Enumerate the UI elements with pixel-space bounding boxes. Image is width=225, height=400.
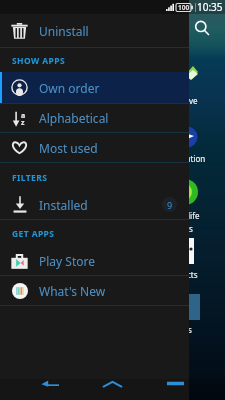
staticText: What's New (39, 283, 106, 299)
staticText: cts (187, 269, 198, 280)
staticText: Alphabetical (39, 110, 109, 126)
staticText: SHOW APPS (12, 55, 65, 67)
staticText: 9 (167, 199, 173, 211)
button[interactable]: a (0, 104, 189, 132)
staticText: s (189, 223, 193, 234)
button[interactable]: Uninstall (0, 14, 189, 47)
staticText: Own order (39, 80, 100, 96)
staticText: life (188, 210, 200, 221)
staticText: a (21, 111, 26, 121)
button[interactable]: Search (194, 20, 211, 37)
staticText: z (21, 118, 25, 128)
button[interactable]: Recent apps (144, 379, 207, 388)
staticText: Play Store (39, 253, 95, 269)
button[interactable]: What's New (0, 276, 189, 305)
staticText: Uninstall (39, 23, 89, 39)
staticText: s (188, 324, 192, 335)
staticText: Most used (39, 140, 98, 156)
button[interactable]: Most used (0, 133, 189, 162)
button[interactable]: Play Store (0, 246, 189, 275)
staticText: GET APPS (12, 228, 55, 240)
staticText: FILTERS (12, 172, 48, 184)
staticText: ve (189, 95, 198, 106)
staticText: 100 (178, 3, 190, 12)
staticText: Installed (39, 197, 88, 213)
button[interactable]: Installed (0, 190, 189, 219)
staticText: ation (186, 153, 206, 164)
button[interactable]: Own order (0, 72, 189, 103)
staticText: 10:35 (197, 0, 223, 14)
button[interactable]: Home (81, 379, 144, 388)
button[interactable]: Back (18, 379, 81, 388)
